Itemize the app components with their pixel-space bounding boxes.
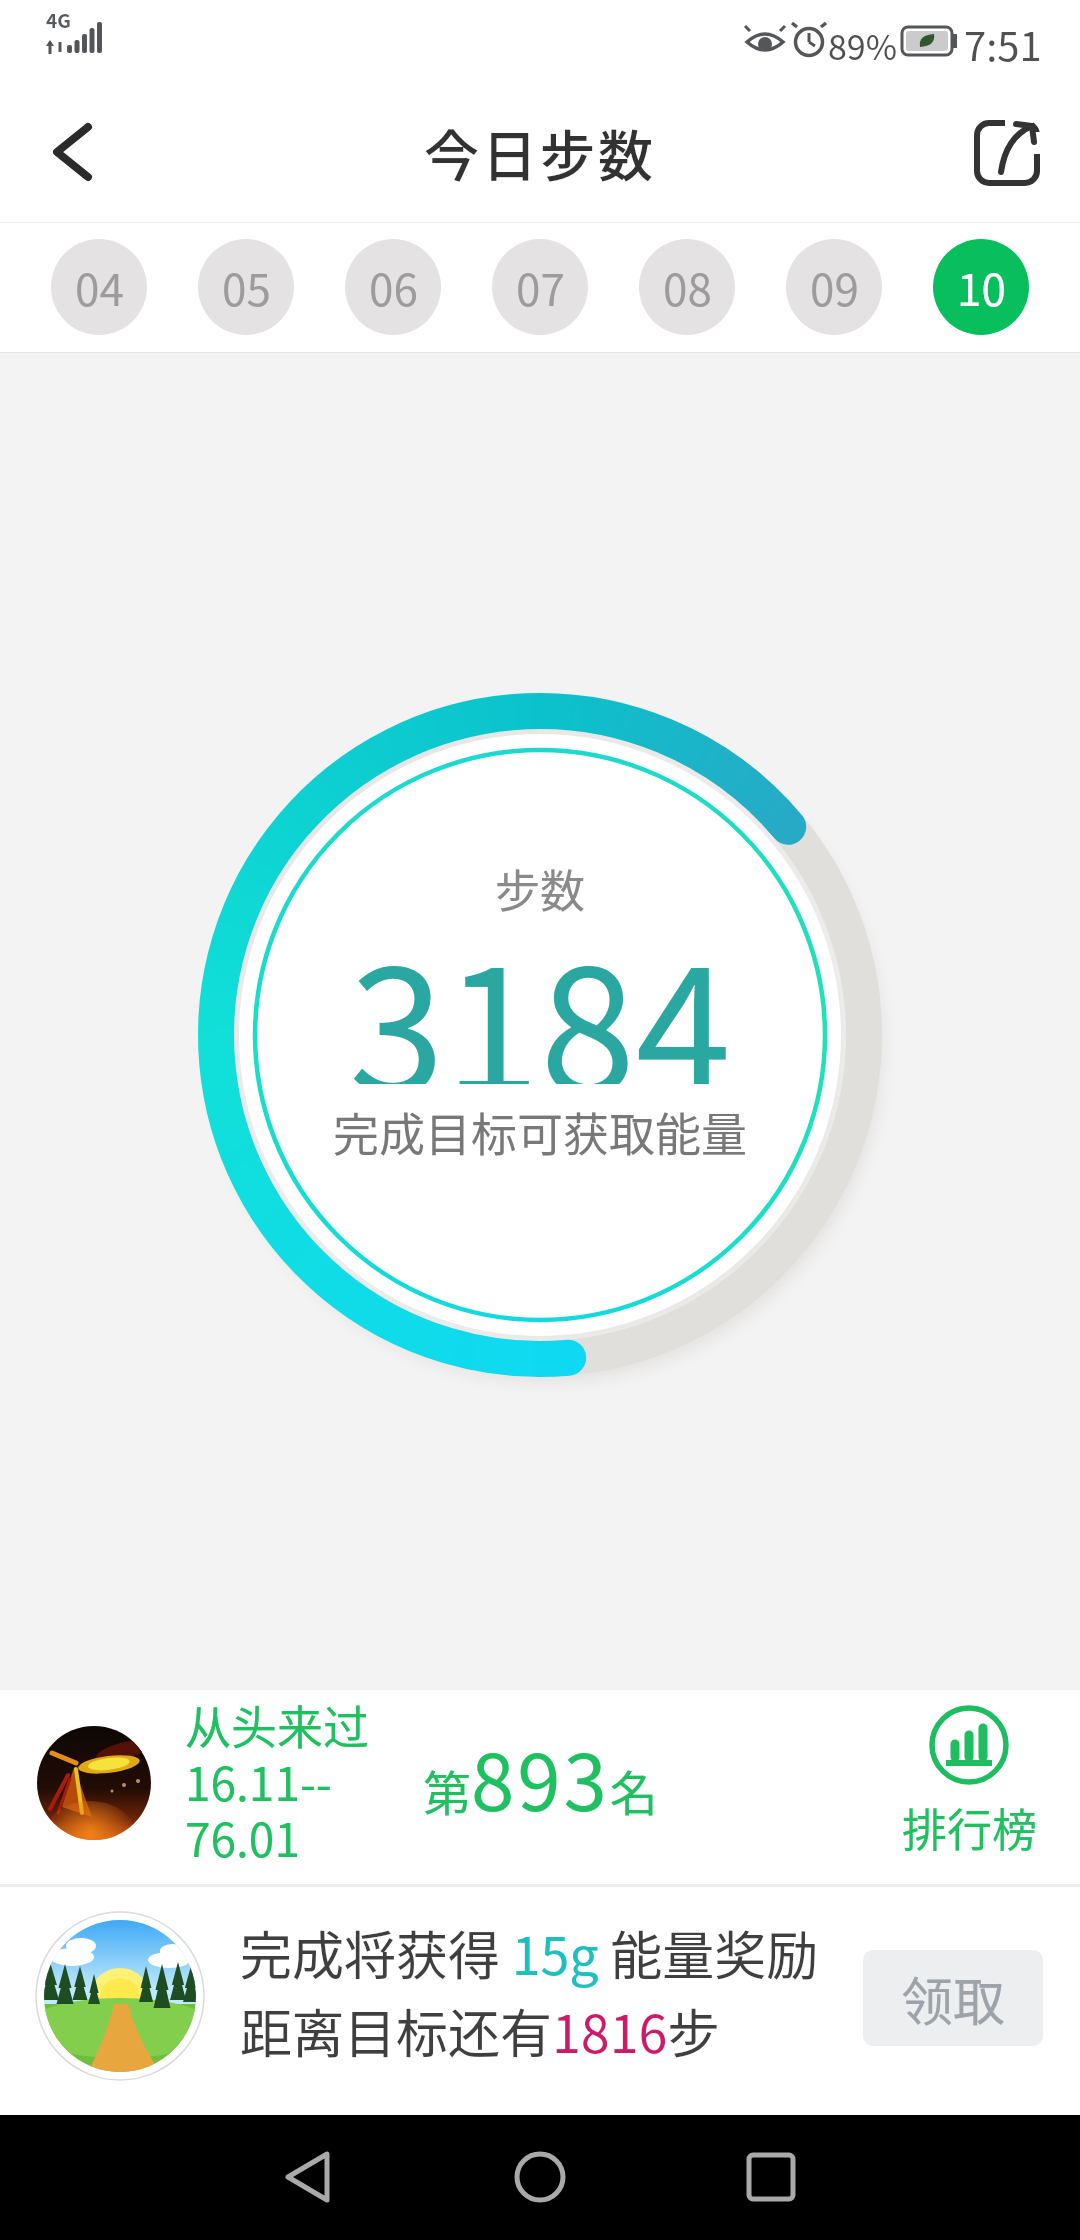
staticText: 从头来过 (185, 1691, 369, 1758)
staticText: 08 (663, 255, 712, 319)
staticText: 04 (75, 255, 124, 319)
staticText: 16.11-- (185, 1748, 332, 1815)
staticText: 领取 (901, 1961, 1006, 2036)
staticText: 排行榜 (902, 1795, 1038, 1853)
staticText: 今日步数 (424, 112, 657, 192)
button[interactable]: 08 (639, 239, 735, 335)
staticText: 07 (516, 255, 565, 319)
button[interactable]: 07 (492, 239, 588, 335)
button[interactable]: 09 (786, 239, 882, 335)
button[interactable] (965, 112, 1049, 196)
staticText: 完成将获得 15g 能量奖励 (240, 1915, 819, 1990)
staticText: 89% (828, 21, 898, 70)
button[interactable]: 05 (198, 239, 294, 335)
staticText: 4G (46, 6, 71, 34)
staticText: 第893名 (423, 1721, 658, 1833)
button[interactable]: 06 (345, 239, 441, 335)
staticText: 3184 (349, 894, 731, 1084)
staticText: 完成目标可获取能量 (333, 1098, 747, 1165)
staticText: 06 (369, 255, 418, 319)
staticText: 步数 (495, 856, 586, 921)
staticText: 09 (810, 255, 859, 319)
button[interactable]: 领取 (863, 1950, 1043, 2046)
button[interactable] (0, 1887, 1080, 2115)
button[interactable] (250, 2125, 370, 2230)
staticText: 7:51 (964, 15, 1042, 73)
button[interactable] (0, 1690, 1080, 1884)
staticText: 76.01 (185, 1804, 300, 1871)
staticText: 10 (957, 255, 1006, 319)
button[interactable] (880, 1695, 1060, 1865)
button[interactable] (710, 2125, 830, 2230)
button[interactable] (480, 2125, 600, 2230)
button[interactable]: 04 (51, 239, 147, 335)
button[interactable] (35, 115, 115, 195)
staticText: 05 (222, 255, 271, 319)
staticText: 距离目标还有1816步 (240, 1993, 720, 2068)
button[interactable]: 10 (933, 239, 1029, 335)
